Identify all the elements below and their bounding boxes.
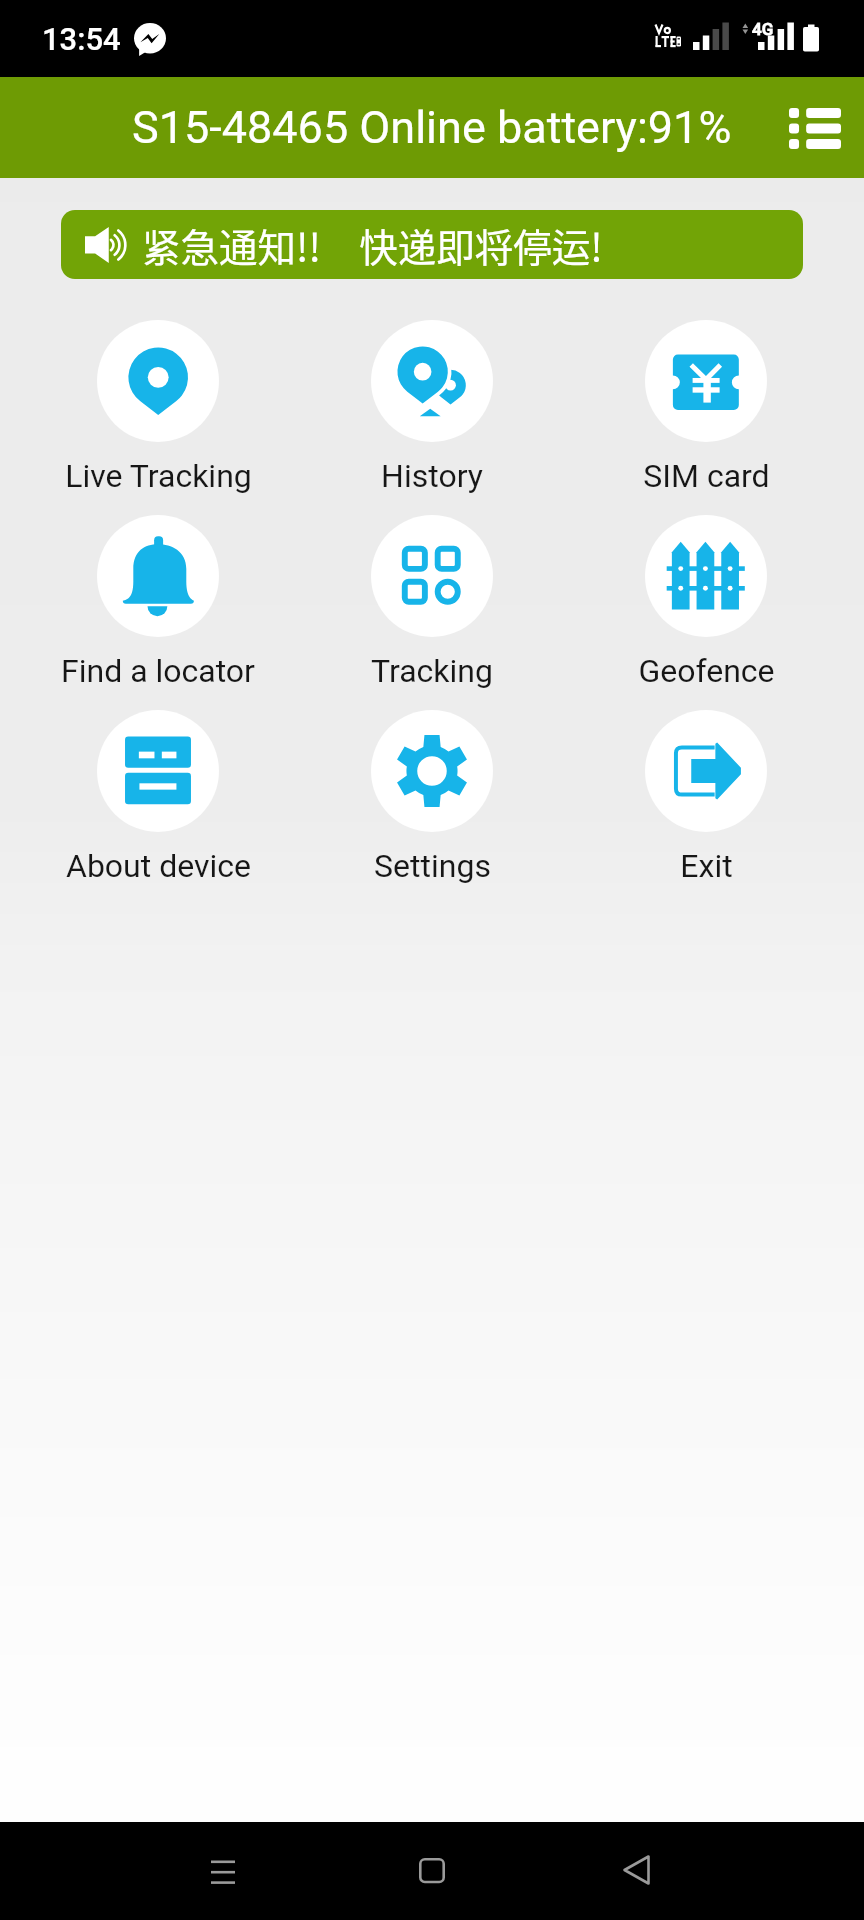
button[interactable]: 紧急通知!! 快递即将停运!	[61, 210, 803, 279]
button[interactable]: Exit	[569, 710, 843, 905]
staticText: Geofence	[638, 652, 775, 690]
staticText: 13:54	[42, 21, 121, 57]
staticText: History	[381, 457, 483, 495]
button[interactable]: Home	[392, 1830, 472, 1910]
button[interactable]: Live Tracking	[21, 320, 295, 515]
staticText: Find a locator	[61, 652, 255, 690]
button[interactable]: Settings	[295, 710, 569, 905]
button[interactable]: Menu	[783, 96, 847, 160]
button[interactable]: About device	[21, 710, 295, 905]
staticText: Settings	[374, 847, 491, 885]
button[interactable]: SIM card	[569, 320, 843, 515]
button[interactable]: Recents	[183, 1830, 263, 1910]
staticText: Exit	[680, 847, 733, 885]
staticText: About device	[66, 847, 251, 885]
button[interactable]: Geofence	[569, 515, 843, 710]
button[interactable]: Find a locator	[21, 515, 295, 710]
staticText: SIM card	[643, 457, 770, 495]
button[interactable]: Tracking	[295, 515, 569, 710]
staticText: 紧急通知!! 快递即将停运!	[142, 217, 603, 273]
staticText: Tracking	[371, 652, 493, 690]
staticText: Live Tracking	[65, 457, 252, 495]
button[interactable]: History	[295, 320, 569, 515]
staticText: 4G	[752, 19, 774, 39]
button[interactable]: Back	[597, 1830, 677, 1910]
staticText: S15-48465 Online battery:91%	[132, 101, 732, 154]
